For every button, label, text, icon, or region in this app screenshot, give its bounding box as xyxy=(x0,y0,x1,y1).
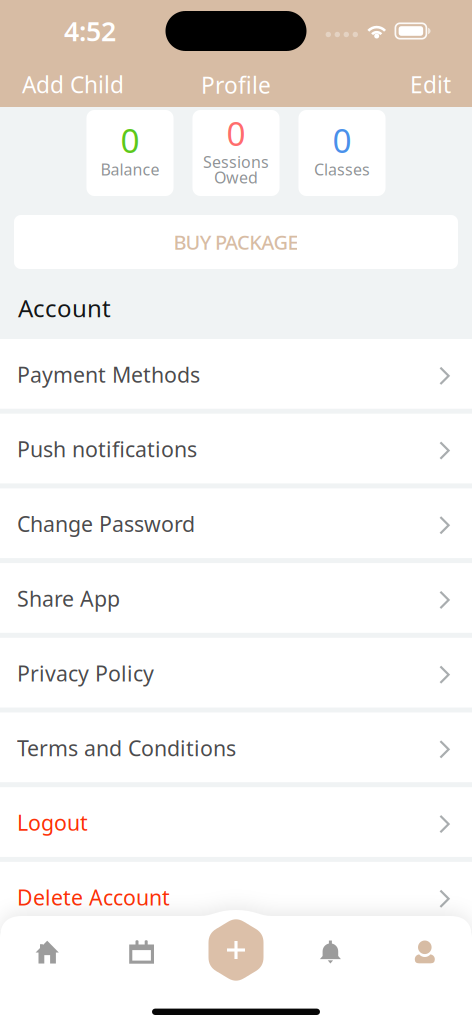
staticText: Owed xyxy=(214,167,258,188)
button[interactable]: Push notifications xyxy=(0,414,472,483)
button[interactable]: Change Password xyxy=(0,488,472,558)
staticText: 0 xyxy=(120,118,139,162)
button[interactable]: Logout xyxy=(0,787,472,857)
staticText: Terms and Conditions xyxy=(17,734,236,762)
button[interactable]: Edit xyxy=(394,62,472,106)
staticText: Classes xyxy=(314,159,370,180)
button[interactable]: BUY PACKAGE xyxy=(14,215,458,269)
button[interactable]: Notifications xyxy=(283,922,378,982)
button[interactable]: Home xyxy=(0,922,94,982)
staticText: Delete Account xyxy=(17,883,170,911)
staticText: Add Child xyxy=(22,69,124,99)
staticText: Logout xyxy=(17,808,88,837)
staticText: Account xyxy=(18,292,111,324)
staticText: Privacy Policy xyxy=(17,659,154,687)
button[interactable]: Add xyxy=(189,922,283,982)
button[interactable]: Terms and Conditions xyxy=(0,712,472,782)
staticText: Change Password xyxy=(17,510,195,538)
staticText: Balance xyxy=(100,159,159,180)
button[interactable]: Share App xyxy=(0,563,472,633)
staticText: 0 xyxy=(332,118,351,162)
button[interactable]: Delete Account xyxy=(0,862,472,932)
staticText: Sessions xyxy=(203,151,269,172)
staticText: 0 xyxy=(226,111,245,155)
button[interactable]: Add Child xyxy=(0,62,140,106)
button[interactable]: Payment Methods xyxy=(0,339,472,409)
staticText: Push notifications xyxy=(17,435,197,463)
button[interactable]: Schedule xyxy=(94,922,189,982)
button[interactable]: Privacy Policy xyxy=(0,638,472,707)
staticText: Share App xyxy=(17,584,120,613)
staticText: Payment Methods xyxy=(17,360,200,388)
staticText: Edit xyxy=(410,69,451,99)
staticText: BUY PACKAGE xyxy=(173,229,298,255)
button[interactable]: Profile xyxy=(378,922,472,982)
staticText: Profile xyxy=(201,70,271,100)
staticText: 4:52 xyxy=(64,13,116,49)
